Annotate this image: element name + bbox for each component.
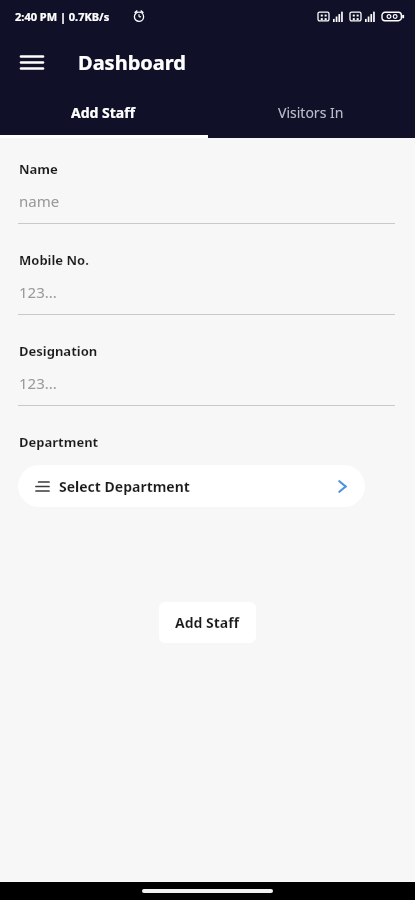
staticText: Select Department <box>59 477 190 496</box>
staticText: Designation <box>19 342 98 360</box>
staticText: Dashboard <box>78 49 186 76</box>
staticText: 123... <box>19 282 57 302</box>
staticText: name <box>19 191 60 211</box>
button[interactable]: Visitors In <box>207 92 415 138</box>
staticText: Add Staff <box>71 103 136 122</box>
staticText: Mobile No. <box>19 251 89 269</box>
staticText: 2:40 PM | 0.7KB/s <box>15 9 110 24</box>
button[interactable]: Add Staff <box>159 602 256 643</box>
staticText: Department <box>19 433 99 451</box>
staticText: Name <box>19 160 58 178</box>
button[interactable]: Open navigation menu <box>16 46 48 78</box>
button[interactable]: Add Staff <box>0 92 207 138</box>
staticText: Visitors In <box>278 103 344 122</box>
staticText: Add Staff <box>175 613 240 632</box>
staticText: 123... <box>19 373 57 393</box>
button[interactable]: Select Department <box>18 465 365 507</box>
